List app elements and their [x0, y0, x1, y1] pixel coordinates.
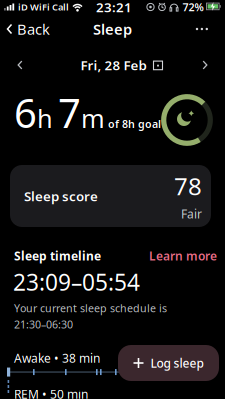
staticText: 21:30–06:30 — [14, 317, 73, 331]
staticText: Awake • 38 min — [14, 350, 100, 366]
staticText: 78 — [174, 170, 202, 202]
staticText: iD WiFi Call — [18, 1, 69, 13]
button[interactable]: Sleep score — [10, 165, 211, 227]
button[interactable] — [202, 60, 225, 69]
button[interactable] — [196, 28, 225, 30]
staticText: 72% — [182, 0, 203, 14]
button[interactable] — [0, 60, 23, 69]
staticText: Your current sleep schedule is — [14, 301, 167, 315]
staticText: Sleep score — [24, 187, 98, 205]
staticText: 23:09–05:54 — [13, 267, 140, 297]
staticText: Fri, 28 Feb — [80, 56, 146, 74]
staticText: of 8h goal — [108, 117, 161, 131]
staticText: Sleep timeline — [14, 248, 101, 264]
staticText: REM • 50 min — [14, 386, 88, 399]
staticText: m — [81, 101, 105, 135]
staticText: 7 — [58, 86, 81, 139]
staticText: Fair — [181, 206, 202, 222]
button[interactable]: Back — [0, 19, 50, 39]
staticText: Back — [17, 19, 50, 39]
button[interactable]: Fri, 28 Feb — [61, 56, 163, 74]
staticText: h — [37, 101, 53, 135]
staticText: Sleep — [93, 19, 132, 39]
staticText: Learn more — [149, 248, 217, 264]
staticText: Log sleep — [150, 355, 203, 371]
button[interactable]: Log sleep — [118, 345, 219, 381]
button[interactable]: Learn more — [149, 248, 217, 264]
staticText: 6 — [14, 86, 37, 139]
staticText: 23:21 — [96, 0, 132, 16]
